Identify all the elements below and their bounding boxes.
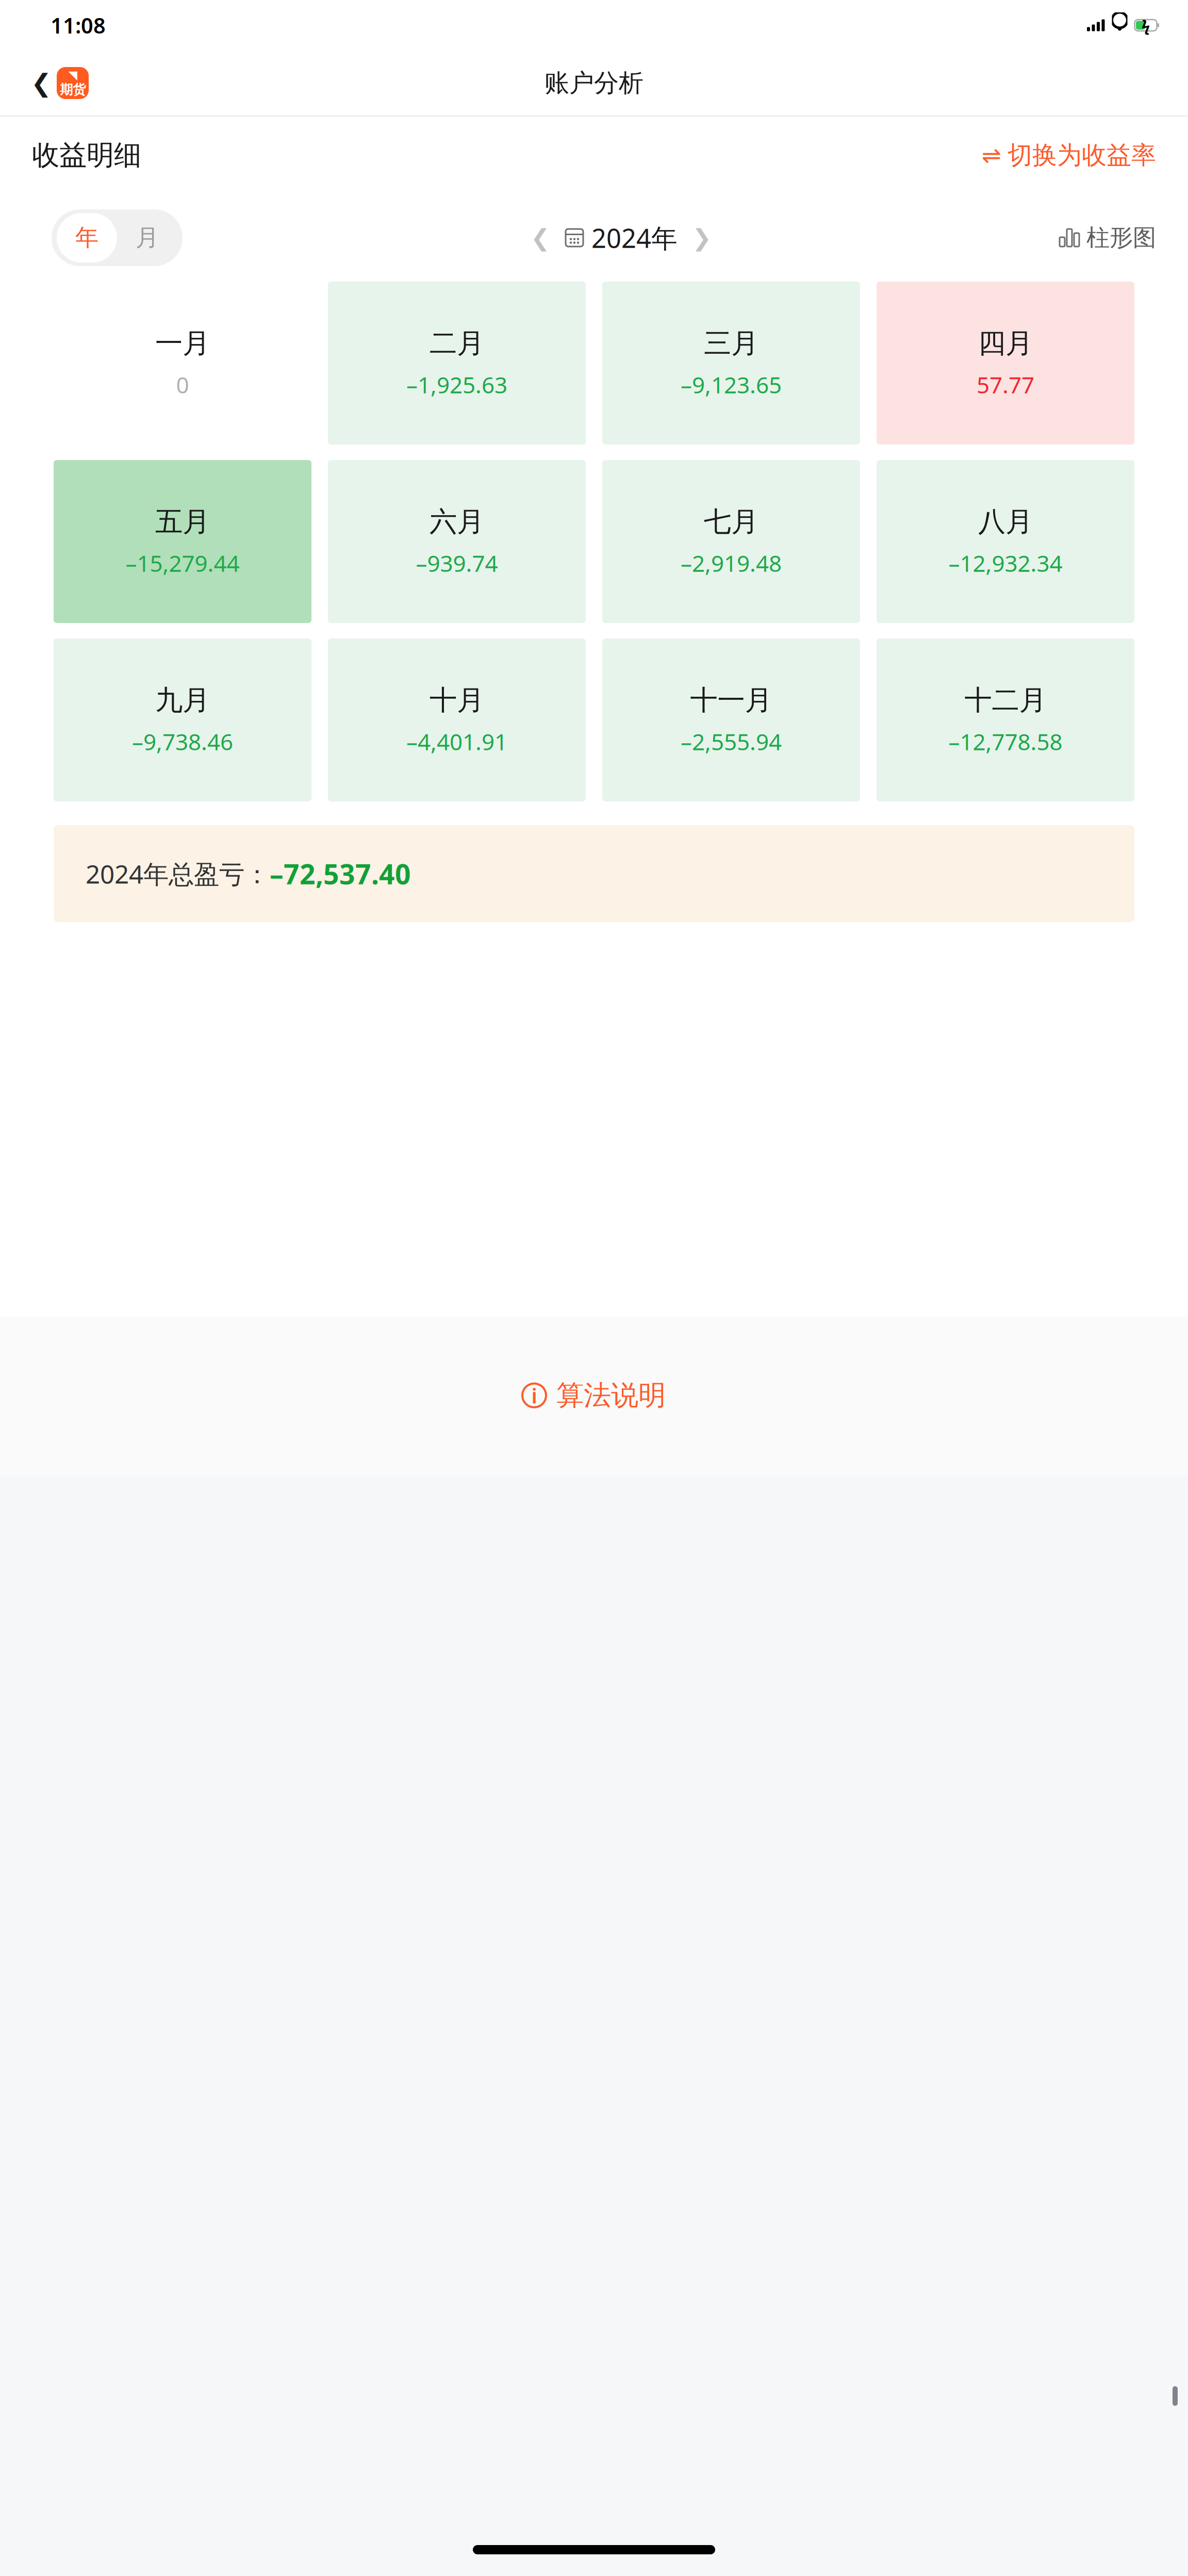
- staticText: 十二月: [964, 683, 1046, 717]
- staticText: –9,738.46: [132, 726, 233, 757]
- staticText: –72,537.40: [270, 855, 411, 892]
- staticText: 0: [176, 370, 189, 400]
- staticText: 切换为收益率: [1008, 140, 1156, 170]
- staticText: 年: [75, 223, 98, 252]
- staticText: ❮: [531, 224, 550, 251]
- button[interactable]: 九月: [54, 638, 311, 801]
- button[interactable]: 十一月: [602, 638, 860, 801]
- button[interactable]: 柱形图: [1060, 218, 1156, 257]
- staticText: 九月: [155, 683, 210, 717]
- staticText: –939.74: [416, 548, 498, 578]
- staticText: ❯: [692, 224, 712, 251]
- staticText: 月: [136, 223, 159, 252]
- staticText: 十月: [430, 683, 484, 717]
- staticText: 十一月: [690, 683, 772, 717]
- staticText: ⇌: [982, 142, 1001, 169]
- button[interactable]: 十二月: [877, 638, 1134, 801]
- button[interactable]: 八月: [877, 460, 1134, 623]
- staticText: 收益明细: [32, 138, 141, 172]
- button[interactable]: 年: [57, 213, 117, 262]
- button[interactable]: 五月: [54, 460, 311, 623]
- staticText: 57.77: [977, 370, 1034, 400]
- staticText: –12,932.34: [948, 548, 1062, 578]
- staticText: –1,925.63: [406, 370, 507, 400]
- staticText: 二月: [430, 326, 484, 360]
- staticText: 柱形图: [1086, 223, 1156, 252]
- button[interactable]: 六月: [328, 460, 586, 623]
- staticText: 五月: [155, 505, 210, 539]
- button[interactable]: 三月: [602, 282, 860, 445]
- staticText: –15,279.44: [126, 548, 240, 578]
- staticText: 算法说明: [556, 1379, 666, 1412]
- button[interactable]: 一月: [54, 282, 311, 445]
- staticText: 账户分析: [544, 68, 643, 98]
- button[interactable]: i: [507, 1367, 681, 1424]
- button[interactable]: Previous year: [522, 217, 558, 258]
- staticText: –2,919.48: [681, 548, 782, 578]
- button[interactable]: 月: [117, 213, 177, 262]
- staticText: 11:08: [51, 11, 106, 39]
- staticText: 七月: [704, 505, 758, 539]
- button[interactable]: Next year: [684, 217, 720, 258]
- staticText: ϟ: [1142, 15, 1150, 35]
- button[interactable]: ⇌: [982, 136, 1156, 175]
- staticText: 2024年: [591, 220, 678, 255]
- button[interactable]: 十月: [328, 638, 586, 801]
- staticText: i: [531, 1382, 537, 1409]
- staticText: 期货: [60, 82, 86, 98]
- button[interactable]: 四月: [877, 282, 1134, 445]
- staticText: 六月: [430, 505, 484, 539]
- button[interactable]: 二月: [328, 282, 586, 445]
- button[interactable]: 七月: [602, 460, 860, 623]
- staticText: –2,555.94: [681, 726, 782, 757]
- staticText: –12,778.58: [948, 726, 1062, 757]
- staticText: –4,401.91: [406, 726, 507, 757]
- staticText: 2024年总盈亏：: [86, 857, 270, 890]
- staticText: –9,123.65: [681, 370, 782, 400]
- button[interactable]: Back: [22, 61, 98, 105]
- staticText: ❮: [31, 69, 52, 97]
- staticText: 一月: [155, 326, 210, 360]
- staticText: ◥: [68, 68, 77, 82]
- staticText: 八月: [978, 505, 1033, 539]
- staticText: 三月: [704, 326, 758, 360]
- staticText: 四月: [978, 326, 1033, 360]
- button[interactable]: 2024年: [558, 215, 684, 260]
